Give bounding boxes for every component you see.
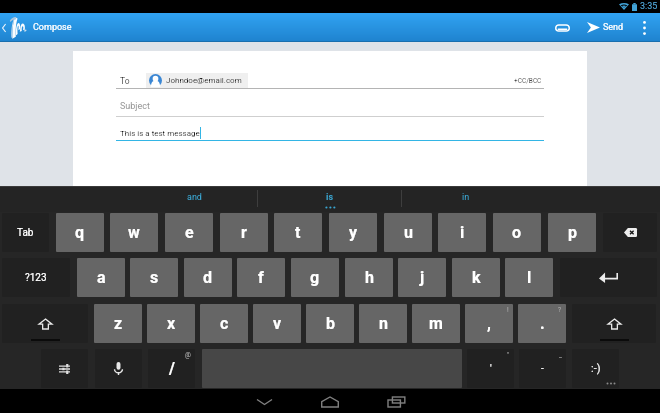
staticText: Johndoe@email.com <box>166 76 242 85</box>
staticText: s <box>150 268 159 287</box>
button[interactable]: x <box>147 304 195 343</box>
button[interactable]: Shift <box>572 304 656 343</box>
staticText: w <box>128 223 140 242</box>
staticText: ? <box>558 306 562 314</box>
staticText: i <box>460 223 465 242</box>
staticText: :-) <box>591 362 601 375</box>
staticText: . <box>540 314 545 333</box>
staticText: _ <box>559 351 562 359</box>
button[interactable]: in <box>432 186 500 212</box>
button[interactable]: , <box>465 304 513 343</box>
staticText: r <box>241 223 247 242</box>
staticText: g <box>310 268 320 287</box>
button[interactable]: a <box>77 258 125 297</box>
button[interactable]: j <box>398 258 446 297</box>
staticText: x <box>167 314 176 333</box>
staticText: @ <box>185 351 191 359</box>
staticText: k <box>472 268 481 287</box>
staticText: n <box>379 314 388 333</box>
button[interactable]: h <box>345 258 393 297</box>
button[interactable]: d <box>184 258 232 297</box>
button[interactable]: z <box>94 304 142 343</box>
button[interactable]: is <box>296 186 364 212</box>
button[interactable]: Backspace <box>603 213 657 252</box>
button[interactable]: Home <box>308 389 352 413</box>
staticText: l <box>527 268 532 287</box>
button[interactable]: c <box>200 304 248 343</box>
staticText: h <box>365 268 374 287</box>
button[interactable]: y <box>329 213 377 252</box>
button[interactable]: k <box>452 258 500 297</box>
button[interactable]: q <box>56 213 104 252</box>
staticText: v <box>273 314 282 333</box>
button[interactable]: p <box>548 213 596 252</box>
staticText: z <box>114 314 123 333</box>
button[interactable]: More options <box>633 13 655 42</box>
button[interactable]: b <box>306 304 354 343</box>
button[interactable]: Hide keyboard <box>242 389 286 413</box>
button[interactable]: +CC/BCC <box>512 76 544 86</box>
staticText: u <box>404 223 413 242</box>
staticText: ?123 <box>25 272 47 284</box>
staticText: " <box>507 351 510 359</box>
button[interactable]: e <box>165 213 213 252</box>
button[interactable]: Voice input <box>95 349 142 388</box>
staticText: Compose <box>33 22 72 33</box>
button[interactable]: . <box>518 304 566 343</box>
staticText: m <box>429 314 443 333</box>
button[interactable]: - <box>519 349 566 388</box>
staticText: in <box>462 192 470 203</box>
staticText: p <box>568 223 577 242</box>
staticText: +CC/BCC <box>514 77 542 85</box>
button[interactable]: Navigate up <box>0 13 30 42</box>
staticText: This is a test message <box>120 129 200 138</box>
button[interactable]: w <box>110 213 158 252</box>
button[interactable]: n <box>359 304 407 343</box>
staticText: , <box>487 314 491 333</box>
button[interactable]: f <box>237 258 285 297</box>
button[interactable]: ' <box>467 349 514 388</box>
button[interactable]: Send <box>584 13 630 42</box>
button[interactable]: Shift <box>2 304 88 343</box>
staticText: o <box>512 223 522 242</box>
button[interactable]: g <box>291 258 339 297</box>
staticText: e <box>185 223 194 242</box>
button[interactable]: Tab <box>2 213 49 252</box>
button[interactable]: u <box>384 213 432 252</box>
staticText: t <box>295 223 301 242</box>
button[interactable]: and <box>160 186 228 212</box>
staticText: b <box>326 314 335 333</box>
staticText: ! <box>507 306 509 314</box>
staticText: and <box>187 192 202 203</box>
staticText: 3:35 <box>640 1 658 12</box>
button[interactable]: l <box>505 258 553 297</box>
button[interactable]: / <box>148 349 195 388</box>
button[interactable]: t <box>274 213 322 252</box>
staticText: is <box>326 192 334 203</box>
staticText: c <box>220 314 229 333</box>
button[interactable]: Recent apps <box>374 389 418 413</box>
staticText: Tab <box>17 227 34 239</box>
button[interactable]: Keyboard settings <box>41 349 88 388</box>
staticText: q <box>75 223 85 242</box>
button[interactable]: Emoji <box>572 349 619 388</box>
staticText: y <box>349 223 358 242</box>
button[interactable]: Attach file <box>545 13 579 42</box>
staticText: j <box>420 268 425 287</box>
button[interactable]: Enter <box>560 258 657 297</box>
button[interactable]: ?123 <box>2 258 70 297</box>
button[interactable]: o <box>493 213 541 252</box>
staticText: Send <box>603 22 624 33</box>
staticText: Subject <box>120 101 150 112</box>
staticText: f <box>258 268 264 287</box>
button[interactable]: m <box>412 304 460 343</box>
button[interactable]: v <box>253 304 301 343</box>
button[interactable]: s <box>130 258 178 297</box>
staticText: / <box>169 359 175 378</box>
button[interactable]: r <box>220 213 268 252</box>
staticText: To <box>120 76 130 86</box>
button[interactable]: Johndoe@email.com <box>146 73 248 88</box>
button[interactable]: i <box>438 213 486 252</box>
staticText: a <box>97 268 106 287</box>
